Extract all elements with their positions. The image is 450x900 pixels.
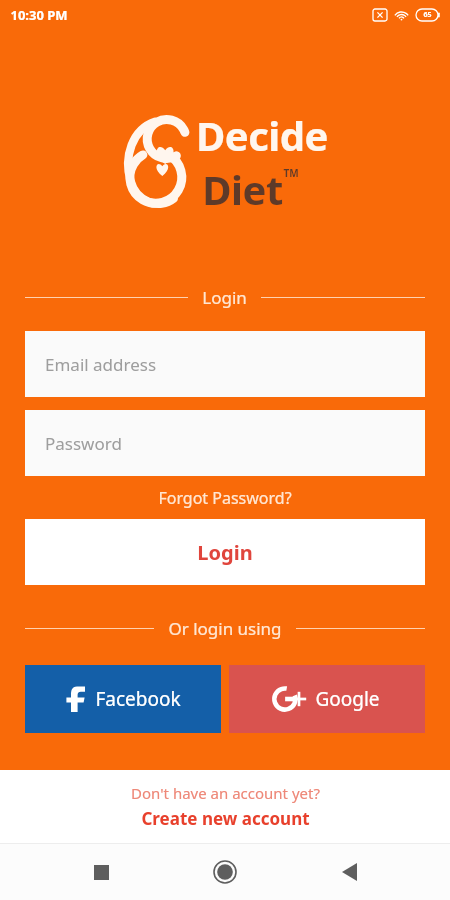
button[interactable]: Email address bbox=[25, 331, 425, 397]
staticText: 10:30 PM bbox=[10, 6, 68, 24]
staticText: Or login using bbox=[168, 617, 282, 640]
button[interactable]: Google bbox=[229, 665, 425, 733]
staticText: Login bbox=[202, 286, 247, 309]
button[interactable]: Login bbox=[25, 519, 425, 585]
staticText: Facebook bbox=[95, 686, 181, 712]
staticText: Don't have an account yet? bbox=[131, 783, 320, 803]
button[interactable]: Recent apps bbox=[78, 849, 124, 895]
staticText: Create new account bbox=[141, 807, 310, 830]
staticText: Password bbox=[45, 432, 122, 455]
staticText: TM bbox=[283, 166, 299, 180]
staticText: Diet bbox=[202, 162, 283, 216]
button[interactable]: Back bbox=[326, 849, 372, 895]
staticText: Forgot Password? bbox=[158, 487, 292, 509]
button[interactable]: Forgot Password? bbox=[148, 484, 302, 512]
staticText: Login bbox=[197, 539, 253, 566]
button[interactable]: Facebook bbox=[25, 665, 221, 733]
button[interactable]: Home bbox=[202, 849, 248, 895]
button[interactable]: Don't have an account yet? bbox=[0, 779, 450, 834]
staticText: Google bbox=[315, 686, 380, 712]
button[interactable]: Password bbox=[25, 410, 425, 476]
staticText: Email address bbox=[45, 353, 157, 376]
staticText: 65 bbox=[423, 10, 432, 20]
staticText: Decide bbox=[196, 108, 328, 162]
